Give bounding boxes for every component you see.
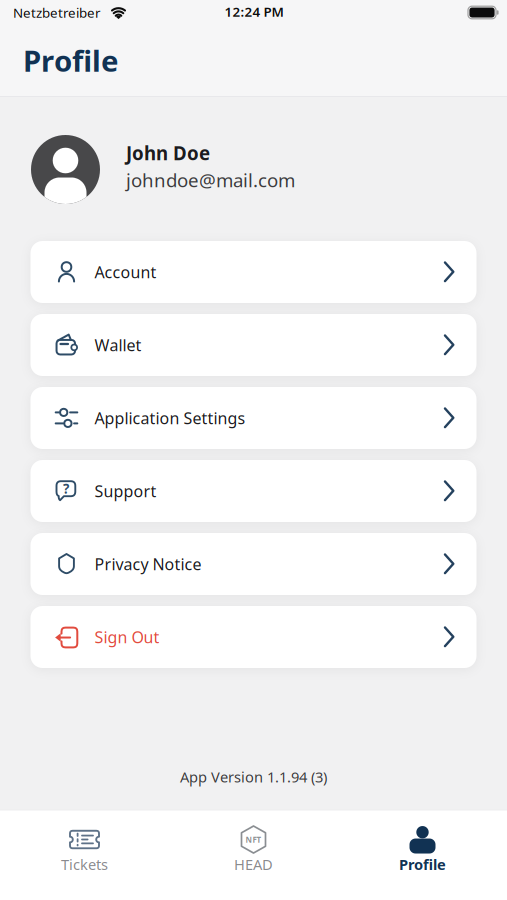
staticText: NFT bbox=[245, 834, 261, 845]
staticText: John Doe bbox=[126, 141, 210, 165]
staticText: johndoe@mail.com bbox=[126, 167, 295, 192]
staticText: Account bbox=[94, 261, 156, 283]
staticText: Wallet bbox=[94, 334, 141, 356]
button[interactable]: Tickets bbox=[0, 825, 169, 874]
button[interactable]: Wallet bbox=[30, 314, 476, 376]
staticText: Sign Out bbox=[94, 626, 159, 648]
staticText: HEAD bbox=[234, 854, 273, 874]
button[interactable]: Account bbox=[30, 241, 476, 303]
button[interactable]: ? bbox=[30, 460, 476, 522]
staticText: Netzbetreiber bbox=[13, 4, 101, 21]
staticText: Application Settings bbox=[94, 407, 245, 429]
staticText: 12:24 PM bbox=[224, 3, 283, 20]
staticText: ? bbox=[63, 480, 69, 497]
staticText: Profile bbox=[23, 41, 119, 80]
button[interactable]: Privacy Notice bbox=[30, 533, 476, 595]
button[interactable]: Application Settings bbox=[30, 387, 476, 449]
button[interactable]: Profile bbox=[338, 825, 507, 874]
staticText: App Version 1.1.94 (3) bbox=[180, 767, 327, 786]
staticText: Support bbox=[94, 480, 156, 502]
button[interactable]: Sign Out bbox=[30, 606, 476, 668]
staticText: Profile bbox=[399, 854, 446, 874]
staticText: Privacy Notice bbox=[94, 553, 201, 575]
staticText: Tickets bbox=[61, 854, 108, 874]
button[interactable]: HEAD bbox=[169, 825, 338, 874]
